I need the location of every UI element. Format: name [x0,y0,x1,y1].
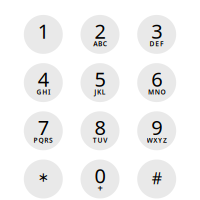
button[interactable]: 4 G H I [24,63,63,102]
staticText: 4 [38,66,49,92]
staticText: WXYZ [146,136,167,145]
button[interactable]: 6 M N O [137,63,176,102]
button[interactable]: 0 Plus [80,159,119,198]
button[interactable]: 8 T U V [80,111,119,150]
button[interactable]: 3 D E F [137,15,176,54]
staticText: PQRS [34,136,53,145]
staticText: 8 [94,114,105,141]
staticText: 1 [38,18,49,44]
button[interactable]: 1 [24,15,63,54]
staticText: 9 [151,114,162,141]
staticText: ABC [93,39,107,48]
staticText: 0 [94,162,105,189]
staticText: ∗ [38,170,49,185]
staticText: GHI [36,87,50,96]
staticText: 2 [94,18,105,44]
staticText: # [152,167,162,189]
button[interactable]: 9 W X Y Z [137,111,176,150]
button[interactable]: 5 J K L [80,63,119,102]
button[interactable]: 2 A B C [80,15,119,54]
staticText: TUV [93,136,107,145]
staticText: 3 [151,18,162,44]
button[interactable]: Pound [137,159,176,198]
staticText: 5 [94,66,105,92]
staticText: JKL [94,87,106,96]
staticText: + [97,182,102,194]
staticText: 7 [38,114,49,141]
button[interactable]: 7 P Q R S [24,111,63,150]
staticText: DEF [149,39,164,48]
button[interactable]: Star [24,159,63,198]
staticText: 6 [151,66,162,92]
staticText: MNO [148,87,165,96]
